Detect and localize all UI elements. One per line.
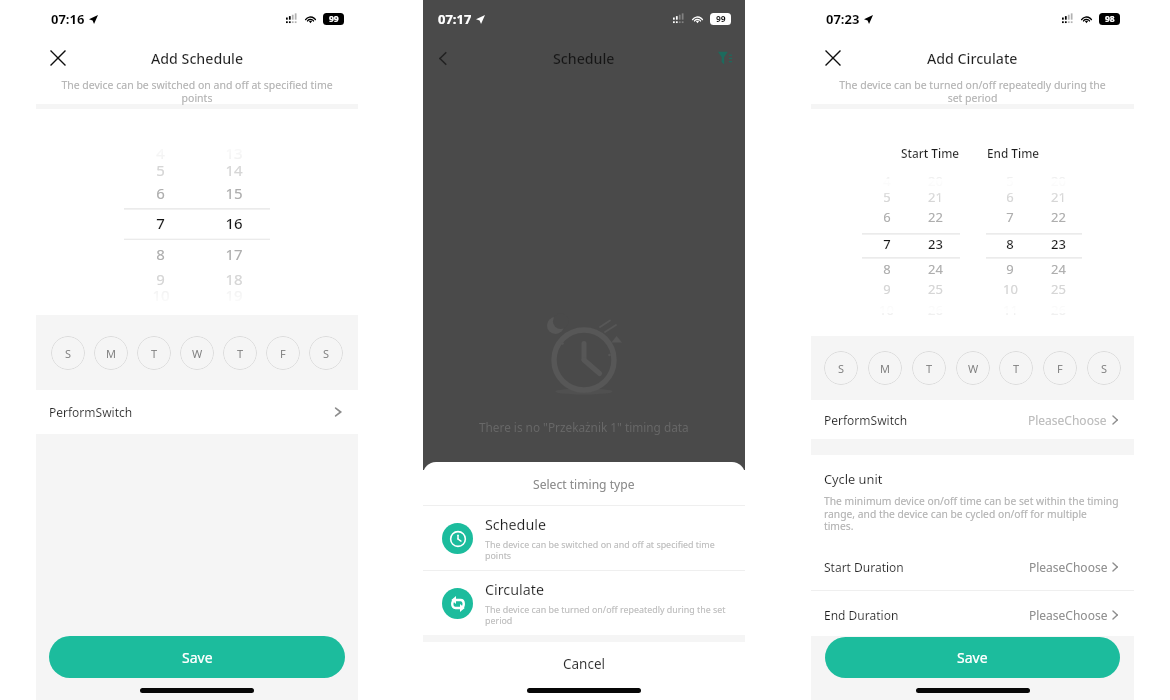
- button[interactable]: Back: [431, 46, 455, 70]
- staticText: PleaseChoose: [1029, 607, 1108, 623]
- staticText: 98: [1105, 13, 1115, 25]
- button[interactable]: T: [912, 351, 946, 385]
- button[interactable]: S: [51, 336, 85, 370]
- staticText: 24: [928, 260, 943, 278]
- staticText: 07:17: [438, 10, 472, 28]
- staticText: 7: [883, 235, 891, 253]
- staticText: S: [1101, 361, 1108, 376]
- staticText: 6: [1006, 188, 1014, 206]
- button[interactable]: T: [999, 351, 1033, 385]
- staticText: There is no "Przekażnik 1" timing data: [479, 419, 689, 435]
- staticText: 13: [225, 143, 243, 161]
- staticText: 19: [225, 285, 243, 303]
- staticText: Add Schedule: [151, 49, 244, 68]
- staticText: W: [192, 346, 203, 361]
- staticText: 16: [225, 213, 243, 231]
- staticText: Save: [182, 648, 213, 667]
- button[interactable]: S: [1087, 351, 1121, 385]
- button[interactable]: S: [824, 351, 858, 385]
- staticText: W: [968, 361, 979, 376]
- staticText: 9: [883, 280, 891, 298]
- staticText: 4: [156, 143, 165, 161]
- staticText: 7: [1006, 208, 1014, 226]
- staticText: Schedule: [553, 49, 615, 68]
- button[interactable]: T: [223, 336, 257, 370]
- staticText: S: [838, 361, 845, 376]
- staticText: PleaseChoose: [1029, 559, 1108, 575]
- staticText: Schedule: [485, 515, 546, 534]
- button[interactable]: F: [1043, 351, 1077, 385]
- staticText: Cycle unit: [824, 470, 883, 487]
- staticText: T: [237, 346, 244, 361]
- staticText: 23: [928, 235, 943, 253]
- button[interactable]: W: [180, 336, 214, 370]
- button[interactable]: Save: [49, 636, 345, 678]
- staticText: 17: [225, 244, 243, 262]
- button[interactable]: PerformSwitch: [824, 400, 1121, 439]
- staticText: 10: [152, 285, 170, 303]
- staticText: PerformSwitch: [49, 404, 133, 420]
- staticText: 07:16: [51, 10, 85, 28]
- staticText: Save: [957, 648, 988, 667]
- button[interactable]: Cancel: [423, 642, 745, 686]
- staticText: 23: [1051, 235, 1066, 253]
- button[interactable]: Start Duration: [824, 547, 1121, 587]
- staticText: Circulate: [485, 580, 544, 599]
- staticText: 22: [928, 208, 943, 226]
- staticText: 8: [156, 244, 165, 262]
- button[interactable]: Close: [46, 46, 70, 70]
- staticText: The device can be switched on and off at…: [485, 538, 715, 562]
- button[interactable]: End Duration: [824, 595, 1121, 635]
- staticText: 5: [883, 188, 891, 206]
- staticText: 22: [1051, 208, 1066, 226]
- staticText: End Time: [987, 145, 1040, 161]
- button[interactable]: Close: [821, 46, 845, 70]
- staticText: 18: [225, 269, 243, 287]
- staticText: 5: [156, 160, 165, 178]
- button[interactable]: M: [94, 336, 128, 370]
- staticText: S: [65, 346, 72, 361]
- button[interactable]: Save: [825, 637, 1120, 678]
- staticText: 7: [156, 213, 165, 231]
- button[interactable]: S: [309, 336, 343, 370]
- staticText: T: [151, 346, 158, 361]
- staticText: The device can be turned on/off repeated…: [831, 78, 1114, 105]
- staticText: T: [1013, 361, 1020, 376]
- staticText: PerformSwitch: [824, 412, 908, 428]
- button[interactable]: W: [956, 351, 990, 385]
- staticText: 8: [1006, 235, 1014, 253]
- staticText: The minimum device on/off time can be se…: [824, 494, 1119, 533]
- staticText: 25: [928, 280, 943, 298]
- button[interactable]: F: [266, 336, 300, 370]
- staticText: The device can be switched on and off at…: [56, 78, 338, 105]
- staticText: F: [280, 346, 286, 361]
- staticText: 6: [883, 208, 891, 226]
- staticText: 26: [928, 301, 943, 319]
- staticText: 10: [1003, 280, 1018, 298]
- staticText: 07:23: [826, 10, 860, 28]
- button[interactable]: M: [868, 351, 902, 385]
- staticText: F: [1057, 361, 1063, 376]
- staticText: M: [106, 346, 116, 361]
- staticText: 99: [329, 13, 339, 25]
- button[interactable]: Filter: [715, 48, 735, 68]
- staticText: Add Circulate: [927, 49, 1018, 68]
- staticText: 99: [716, 13, 726, 25]
- staticText: Start Duration: [824, 559, 904, 575]
- staticText: 21: [1051, 188, 1066, 206]
- staticText: 9: [156, 269, 165, 287]
- button[interactable]: PerformSwitch: [49, 390, 345, 434]
- staticText: Cancel: [563, 655, 606, 673]
- staticText: 24: [1051, 260, 1066, 278]
- button[interactable]: T: [137, 336, 171, 370]
- staticText: 9: [1006, 260, 1014, 278]
- staticText: The device can be turned on/off repeated…: [485, 603, 726, 627]
- button[interactable]: Circulate: [442, 571, 731, 635]
- staticText: S: [323, 346, 330, 361]
- button[interactable]: Schedule: [442, 506, 731, 570]
